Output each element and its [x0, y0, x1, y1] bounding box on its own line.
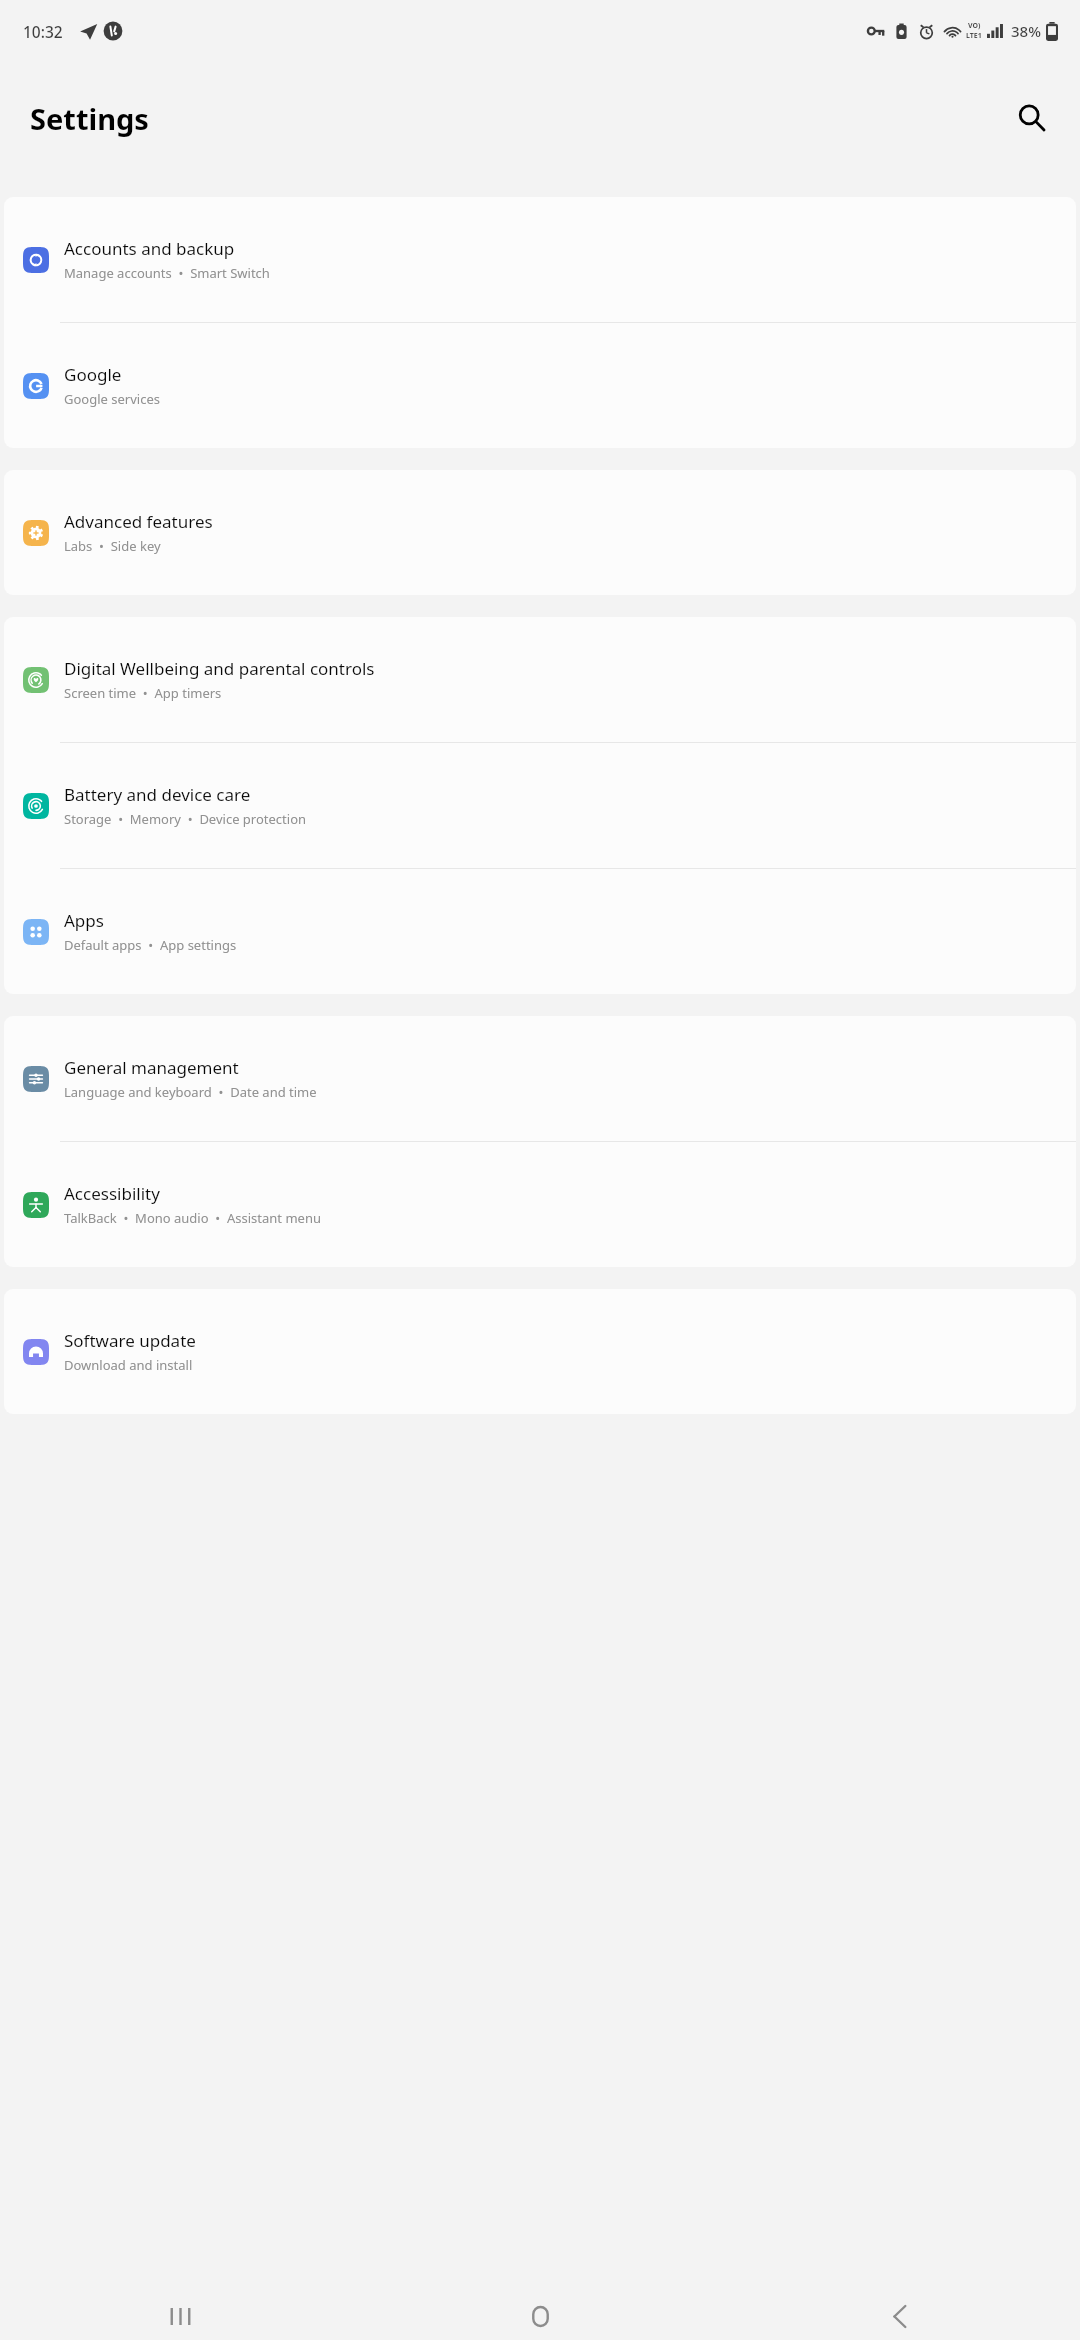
staticText: Default apps • App settings: [64, 936, 237, 954]
button[interactable]: Google: [4, 323, 1076, 448]
button[interactable]: Accounts and backup: [4, 197, 1076, 322]
staticText: Labs • Side key: [64, 537, 161, 555]
staticText: Google: [64, 363, 122, 386]
staticText: TalkBack • Mono audio • Assistant menu: [64, 1209, 321, 1227]
button[interactable]: Accessibility: [4, 1142, 1076, 1267]
staticText: Battery and device care: [64, 783, 251, 806]
button[interactable]: Apps: [4, 869, 1076, 994]
staticText: Storage • Memory • Device protection: [64, 810, 307, 828]
staticText: 38%: [1011, 21, 1041, 41]
staticText: Download and install: [64, 1356, 193, 1374]
staticText: Digital Wellbeing and parental controls: [64, 657, 375, 680]
button[interactable]: Search: [1007, 93, 1057, 143]
staticText: VO): [968, 21, 981, 31]
button[interactable]: Recents: [0, 2292, 360, 2340]
button[interactable]: Advanced features: [4, 470, 1076, 595]
staticText: Google services: [64, 390, 160, 408]
button[interactable]: General management: [4, 1016, 1076, 1141]
staticText: 10:32: [23, 21, 63, 42]
button[interactable]: Back: [720, 2292, 1080, 2340]
staticText: Software update: [64, 1329, 196, 1352]
staticText: Accounts and backup: [64, 237, 235, 260]
button[interactable]: Battery and device care: [4, 743, 1076, 868]
button[interactable]: Home: [360, 2292, 720, 2340]
staticText: Language and keyboard • Date and time: [64, 1083, 317, 1101]
button[interactable]: Software update: [4, 1289, 1076, 1414]
staticText: LTE1: [966, 31, 982, 41]
staticText: Advanced features: [64, 510, 213, 533]
staticText: Accessibility: [64, 1182, 160, 1205]
staticText: Screen time • App timers: [64, 684, 222, 702]
staticText: General management: [64, 1056, 239, 1079]
button[interactable]: Digital Wellbeing and parental controls: [4, 617, 1076, 742]
staticText: Apps: [64, 909, 104, 932]
staticText: Manage accounts • Smart Switch: [64, 264, 270, 282]
staticText: Settings: [30, 99, 149, 138]
